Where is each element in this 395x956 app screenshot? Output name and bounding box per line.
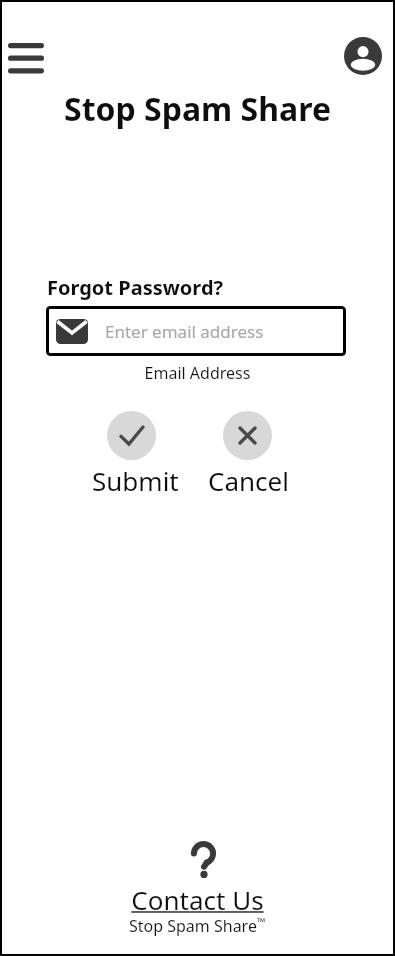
- button[interactable]: Contact Us: [0, 882, 395, 917]
- button[interactable]: [344, 37, 382, 75]
- staticText: Forgot Password?: [47, 274, 224, 301]
- staticText: Stop Spam Share: [129, 915, 257, 937]
- staticText: Stop Spam Share: [0, 87, 395, 131]
- button[interactable]: [107, 411, 156, 460]
- button[interactable]: Submit: [92, 463, 179, 498]
- button[interactable]: [190, 841, 217, 879]
- staticText: Email Address: [0, 362, 395, 384]
- staticText: Enter email address: [105, 320, 264, 343]
- button[interactable]: [223, 411, 272, 460]
- staticText: ™: [257, 915, 266, 929]
- button[interactable]: Enter email address: [46, 306, 346, 356]
- button[interactable]: [8, 43, 44, 73]
- button[interactable]: Cancel: [208, 463, 289, 498]
